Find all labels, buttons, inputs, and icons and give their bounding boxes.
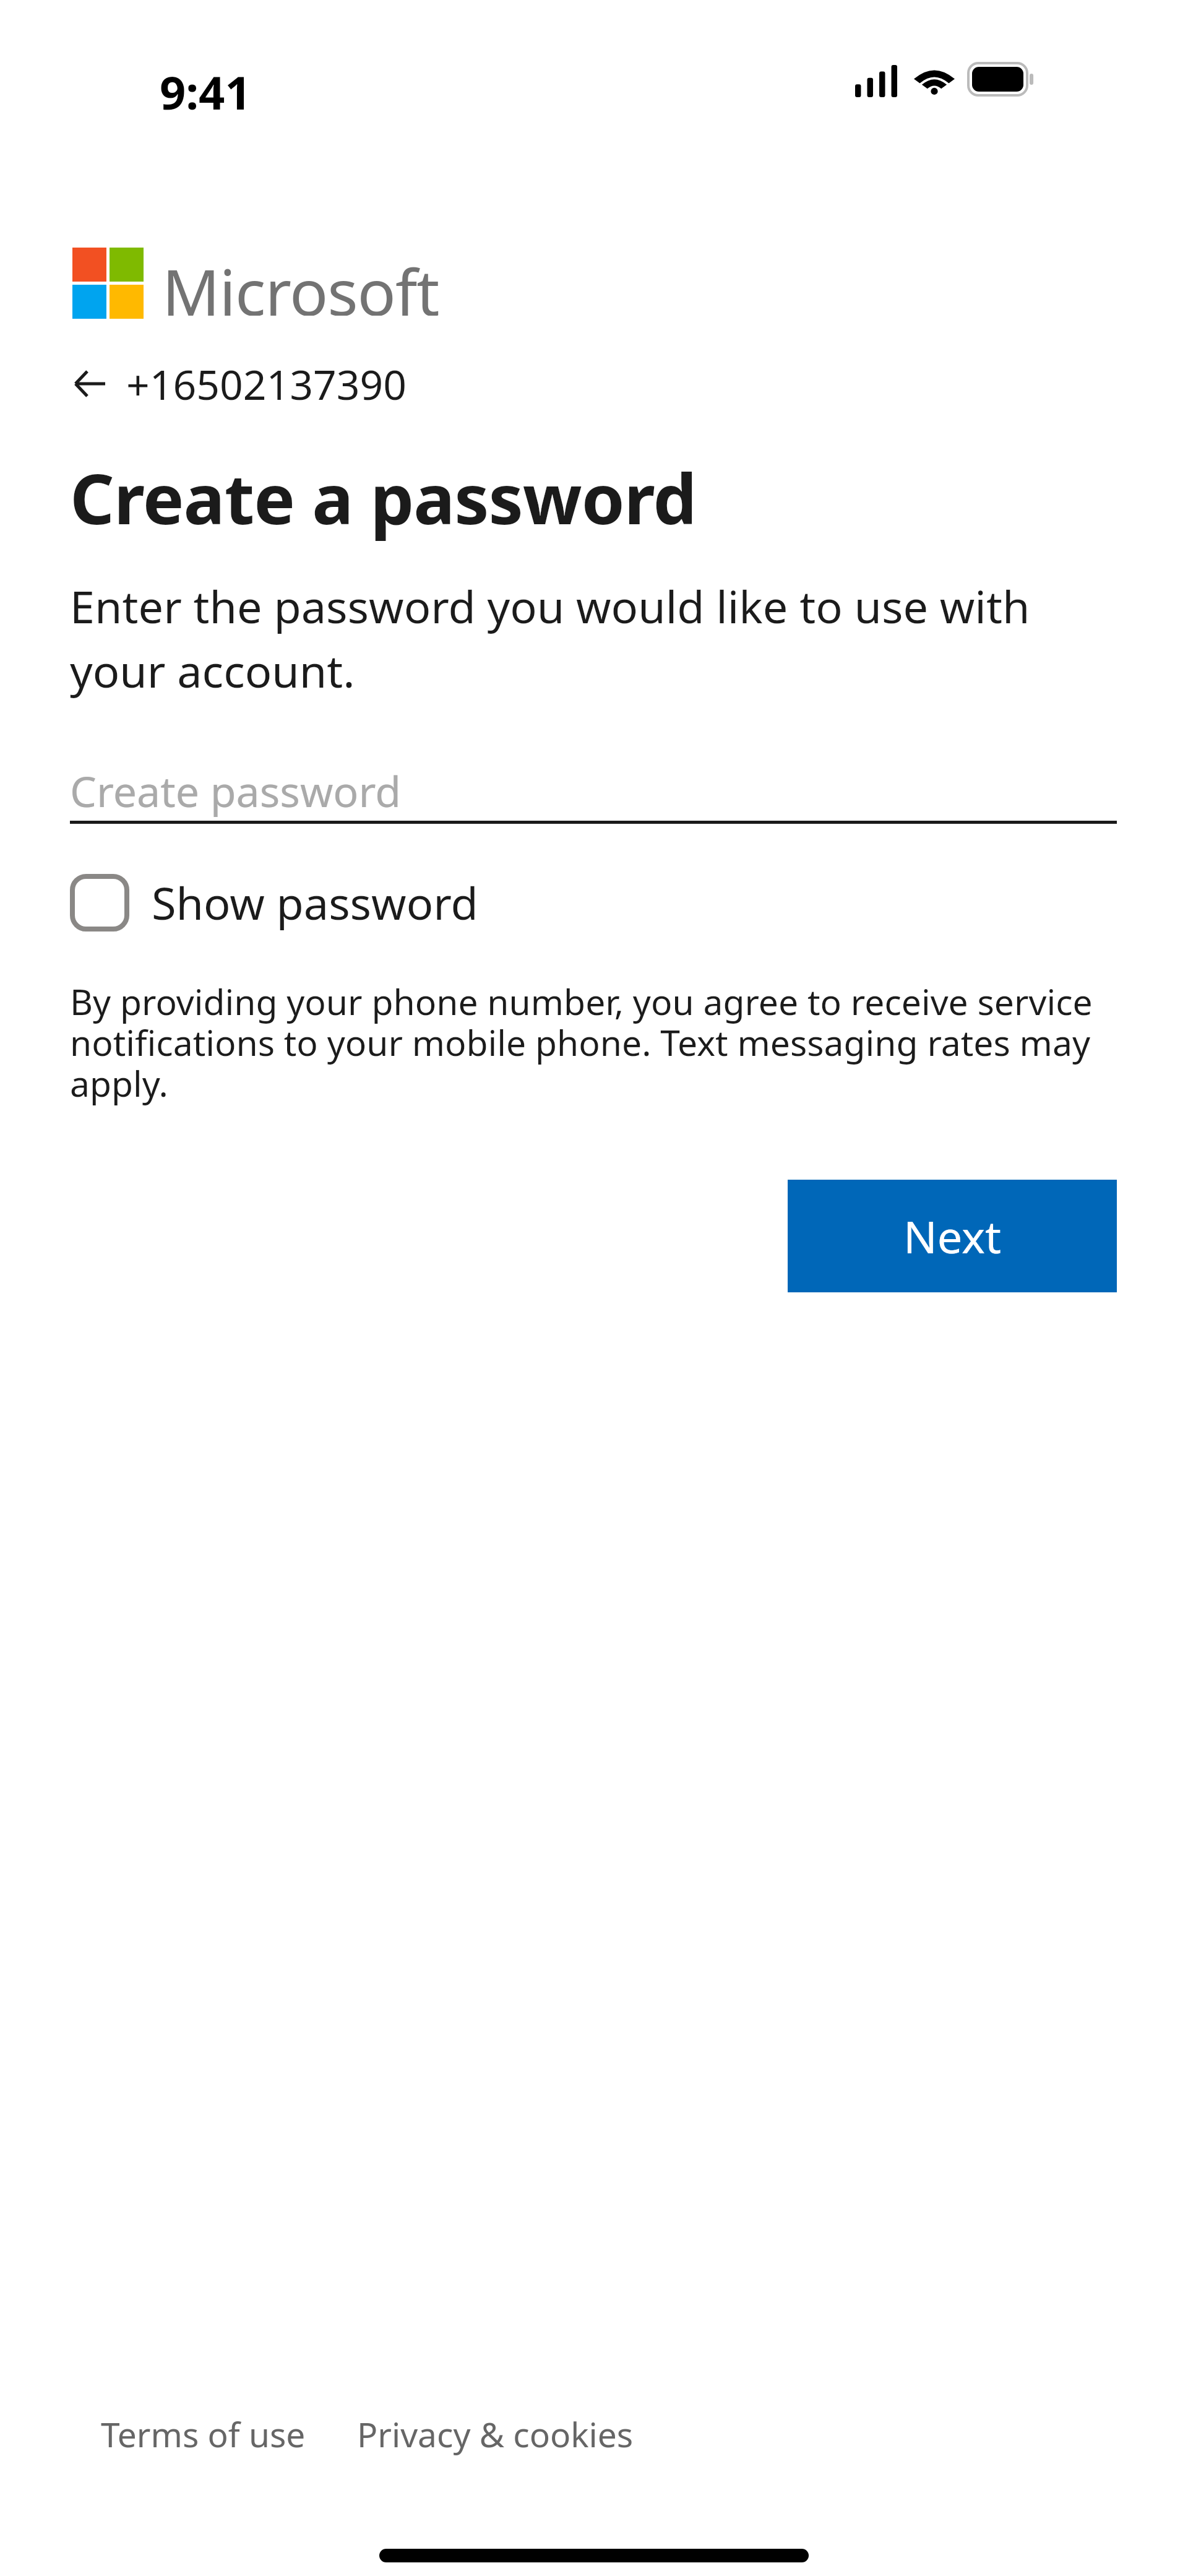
staticText: Next (903, 1206, 1001, 1266)
staticText: Terms of use (101, 2411, 306, 2457)
staticText: Show password (152, 872, 478, 933)
button[interactable]: Next (788, 1180, 1117, 1292)
button[interactable]: Terms of use (101, 2411, 306, 2457)
staticText: 9:41 (160, 61, 251, 123)
staticText: Create password (70, 762, 402, 819)
staticText: Create a password (70, 450, 697, 545)
staticText: Privacy & cookies (357, 2411, 634, 2457)
other: Back (74, 368, 105, 399)
staticText: By providing your phone number, you agre… (70, 977, 1117, 1107)
staticText: +16502137390 (126, 356, 407, 412)
button[interactable]: Create password (70, 760, 1117, 821)
staticText: Microsoft (162, 248, 439, 316)
button[interactable]: Privacy & cookies (357, 2411, 634, 2457)
button[interactable]: Back (74, 350, 426, 418)
staticText: Enter the password you would like to use… (70, 576, 1083, 701)
button[interactable]: Show password (70, 872, 503, 933)
